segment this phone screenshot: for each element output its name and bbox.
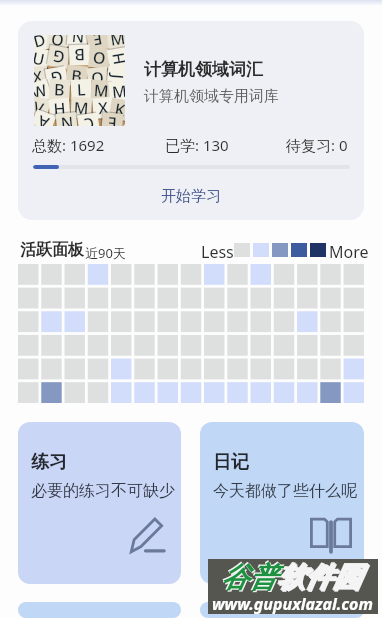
button[interactable] (200, 602, 364, 618)
button[interactable]: 计算机领域词汇 (18, 21, 364, 220)
staticText: 今天都做了些什么呢 (213, 481, 357, 501)
staticText: 计算机领域专用词库 (144, 87, 279, 106)
staticText: 软件园 (278, 561, 362, 596)
staticText: 日记 (213, 451, 249, 474)
button[interactable]: 练习 (18, 422, 181, 584)
staticText: 活跃面板 (20, 240, 84, 260)
staticText: 必要的练习不可缺少 (31, 481, 175, 501)
staticText: 软件园 (276, 559, 360, 594)
staticText: 近90天 (85, 244, 126, 262)
staticText: 谷普 (221, 560, 277, 595)
button[interactable] (18, 602, 181, 618)
staticText: 开始学习 (161, 187, 221, 206)
other: 日记 (309, 517, 353, 554)
staticText: 计算机领域词汇 (144, 59, 263, 80)
staticText: 待复习: 0 (286, 135, 348, 155)
button[interactable]: 开始学习 (18, 177, 364, 216)
other: 练习 (130, 517, 166, 553)
staticText: 练习 (31, 451, 67, 474)
staticText: 谷普 (222, 561, 278, 596)
staticText: 已学: 130 (165, 135, 229, 155)
button[interactable]: 日记 (200, 422, 364, 584)
staticText: 谷普 (220, 559, 276, 594)
staticText: www.gupuxlazal.com (212, 593, 373, 615)
staticText: 总数: 1692 (32, 135, 105, 155)
staticText: More (329, 241, 369, 263)
staticText: 软件园 (277, 560, 361, 595)
staticText: Less (201, 241, 234, 263)
